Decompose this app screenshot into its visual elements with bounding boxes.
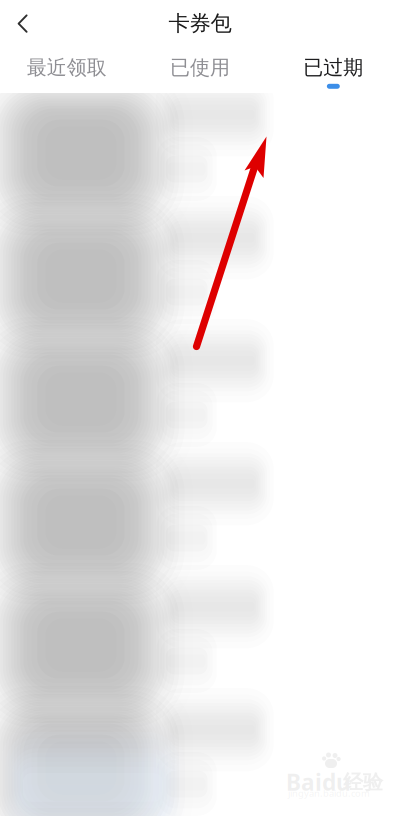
staticText: 经验 <box>343 770 383 795</box>
staticText: Baidu <box>286 767 351 797</box>
staticText: 最近领取 <box>27 55 107 80</box>
button[interactable]: 最近领取 <box>0 47 133 93</box>
button[interactable]: Back <box>0 1 43 46</box>
staticText: 已过期 <box>303 55 363 80</box>
staticText: 卡券包 <box>168 10 231 37</box>
staticText: jingyan.baidu.com <box>288 787 370 799</box>
button[interactable]: 已过期 <box>267 47 400 93</box>
button[interactable]: 已使用 <box>133 47 267 93</box>
staticText: 已使用 <box>170 55 230 80</box>
